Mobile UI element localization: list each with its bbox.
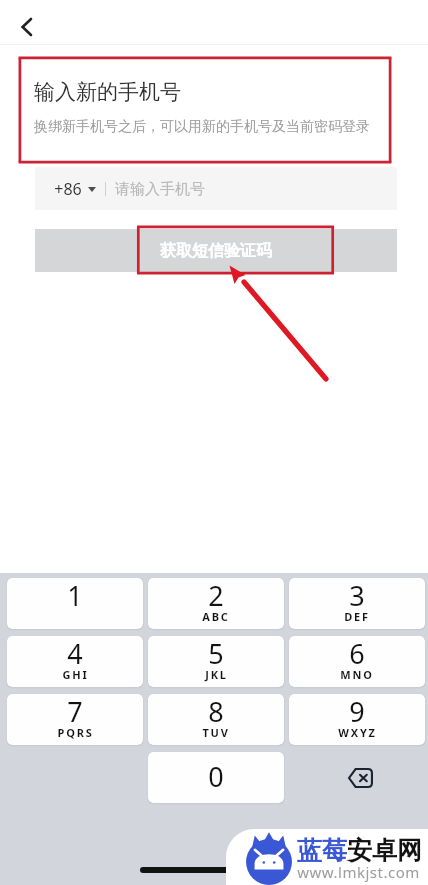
staticText: 1 <box>67 578 83 614</box>
staticText: GHI <box>62 667 89 682</box>
button[interactable]: 7 <box>7 694 143 745</box>
staticText: MNO <box>340 667 374 682</box>
button[interactable]: +86 <box>35 167 397 210</box>
staticText: 7 <box>67 694 83 730</box>
staticText: 5 <box>208 636 224 672</box>
button[interactable]: 3 <box>289 578 425 629</box>
staticText: PQRS <box>57 725 94 740</box>
staticText: 蓝莓 <box>297 835 347 866</box>
button[interactable]: 8 <box>148 694 284 745</box>
staticText: TUV <box>202 725 230 740</box>
button[interactable]: 1 <box>7 578 143 629</box>
button[interactable]: 获取短信验证码 <box>35 229 397 272</box>
button[interactable]: 2 <box>148 578 284 629</box>
staticText: +86 <box>54 178 82 200</box>
staticText: 4 <box>67 636 83 672</box>
staticText: 0 <box>208 758 224 795</box>
staticText: ABC <box>202 609 230 624</box>
button[interactable]: 6 <box>289 636 425 687</box>
staticText: 3 <box>349 578 365 614</box>
button[interactable]: Backspace <box>289 752 425 803</box>
button[interactable]: 4 <box>7 636 143 687</box>
staticText: 请输入手机号 <box>115 180 205 199</box>
staticText: JKL <box>205 667 228 682</box>
button[interactable]: 9 <box>289 694 425 745</box>
staticText: 获取短信验证码 <box>160 241 272 261</box>
staticText: WXYZ <box>338 725 377 740</box>
staticText: DEF <box>344 609 370 624</box>
button[interactable]: 0 <box>148 752 284 803</box>
staticText: 输入新的手机号 <box>34 79 181 105</box>
staticText: 6 <box>349 636 365 672</box>
staticText: 8 <box>208 694 224 730</box>
staticText: 2 <box>208 578 224 614</box>
button[interactable]: Back <box>8 8 46 46</box>
staticText: www.lmkjst.com <box>297 862 420 882</box>
staticText: 9 <box>349 694 365 730</box>
button[interactable]: 5 <box>148 636 284 687</box>
staticText: 安卓网 <box>347 835 422 866</box>
staticText: 换绑新手机号之后，可以用新的手机号及当前密码登录 <box>34 118 370 136</box>
